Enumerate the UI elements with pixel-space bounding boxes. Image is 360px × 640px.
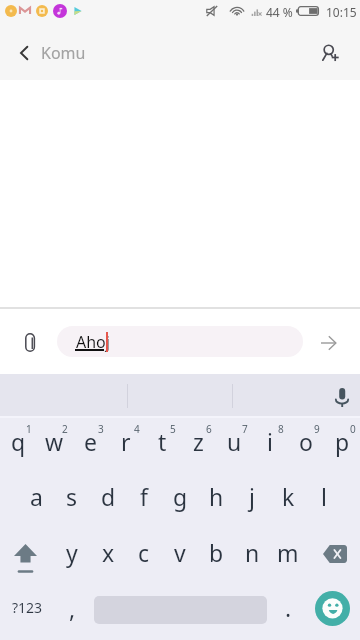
button[interactable]: k	[270, 469, 306, 524]
staticText: n	[245, 537, 260, 568]
button[interactable]: 0	[324, 414, 360, 469]
staticText: w	[45, 426, 64, 457]
staticText: f	[140, 481, 148, 512]
staticText: ?123	[12, 598, 43, 617]
staticText: r	[121, 426, 131, 457]
staticText: 7	[242, 422, 248, 436]
staticText: h	[209, 481, 224, 512]
staticText: a	[30, 481, 43, 512]
staticText: s	[66, 481, 78, 512]
staticText: 9	[314, 422, 320, 436]
staticText: Komu	[41, 42, 86, 64]
button[interactable]: n	[234, 525, 270, 580]
button[interactable]: y	[54, 525, 90, 580]
button[interactable]: 2	[36, 414, 72, 469]
staticText: u	[227, 426, 242, 457]
staticText: o	[299, 426, 313, 457]
button[interactable]: 6	[180, 414, 216, 469]
staticText: c	[138, 537, 150, 568]
button[interactable]: .	[270, 580, 306, 635]
staticText: j	[249, 481, 255, 512]
staticText: z	[193, 426, 204, 457]
button[interactable]: Voice input	[325, 378, 357, 410]
staticText: 4	[134, 422, 140, 436]
button[interactable]: a	[18, 469, 54, 524]
staticText: 8	[278, 422, 284, 436]
staticText: k	[282, 481, 295, 512]
staticText: e	[84, 426, 97, 457]
staticText: p	[335, 426, 350, 457]
button[interactable]: 3	[72, 414, 108, 469]
staticText: ,	[69, 593, 76, 624]
button[interactable]: 5	[144, 414, 180, 469]
button[interactable]: d	[90, 469, 126, 524]
staticText: g	[173, 481, 188, 512]
button[interactable]: ?123	[0, 580, 54, 635]
button[interactable]: Emoji	[315, 591, 350, 626]
button[interactable]: Backspace	[306, 525, 360, 580]
staticText: 5	[170, 422, 176, 436]
button[interactable]: Attach file	[8, 319, 52, 363]
button[interactable]: Ahoj	[57, 326, 303, 357]
button[interactable]: 9	[288, 414, 324, 469]
staticText: b	[209, 537, 224, 568]
button[interactable]: j	[234, 469, 270, 524]
button[interactable]: 8	[252, 414, 288, 469]
staticText: m	[277, 537, 299, 568]
staticText: 3	[98, 422, 104, 436]
staticText: x	[102, 537, 115, 568]
staticText: 1	[26, 422, 32, 436]
staticText: l	[321, 481, 327, 512]
button[interactable]: ,	[54, 580, 90, 635]
button[interactable]: f	[126, 469, 162, 524]
staticText: t	[158, 426, 167, 457]
staticText: i	[267, 426, 273, 457]
button[interactable]: l	[306, 469, 342, 524]
button[interactable]: Add person	[312, 27, 360, 75]
button[interactable]: 7	[216, 414, 252, 469]
button[interactable]: 1	[0, 414, 36, 469]
staticText: 44 %	[266, 4, 293, 20]
staticText: Ahoj	[76, 331, 110, 353]
button[interactable]: v	[162, 525, 198, 580]
button[interactable]: h	[198, 469, 234, 524]
button[interactable]: x	[90, 525, 126, 580]
button[interactable]: Back	[0, 27, 48, 75]
button[interactable]: s	[54, 469, 90, 524]
button[interactable]: Send	[306, 319, 350, 363]
button[interactable]: b	[198, 525, 234, 580]
button[interactable]: 4	[108, 414, 144, 469]
button[interactable]: c	[126, 525, 162, 580]
staticText: .	[285, 592, 292, 623]
staticText: 2	[62, 422, 68, 436]
button[interactable]: Shift	[0, 525, 54, 580]
staticText: q	[11, 426, 26, 457]
staticText: 0	[350, 422, 356, 436]
staticText: 10:15	[326, 4, 357, 20]
button[interactable]: g	[162, 469, 198, 524]
staticText: y	[66, 537, 78, 568]
staticText: d	[101, 481, 116, 512]
staticText: v	[174, 537, 186, 568]
button[interactable]: m	[270, 525, 306, 580]
staticText: 6	[206, 422, 212, 436]
